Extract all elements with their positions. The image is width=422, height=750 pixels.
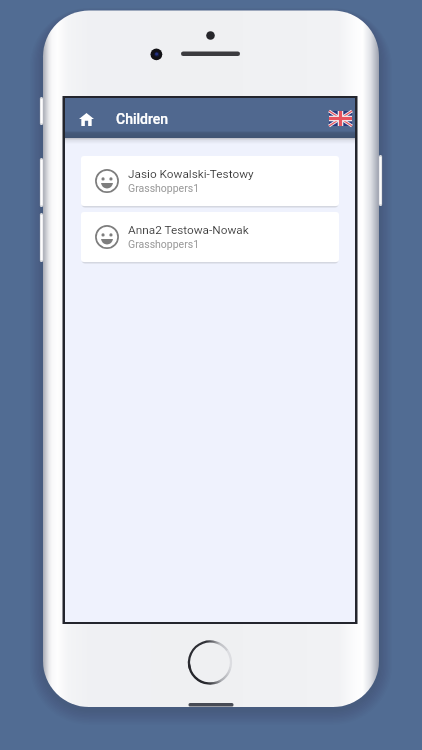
staticText: Grasshoppers1 [128,238,200,250]
button[interactable]: Jasio Kowalski-Testowy [81,156,339,206]
button[interactable]: Change language [325,103,355,133]
staticText: Jasio Kowalski-Testowy [128,167,254,181]
staticText: Anna2 Testowa-Nowak [128,223,249,237]
button[interactable]: Anna2 Testowa-Nowak [81,212,339,262]
button[interactable]: Home [72,104,100,132]
staticText: Grasshoppers1 [128,182,200,194]
staticText: Children [116,111,169,127]
